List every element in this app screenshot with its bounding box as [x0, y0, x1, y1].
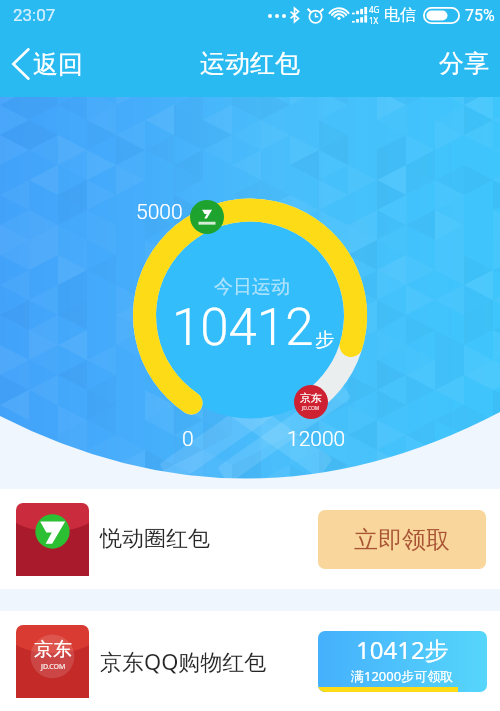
- staticText: 0: [182, 427, 194, 452]
- staticText: 悦动圈红包: [100, 525, 210, 553]
- staticText: 75%: [465, 6, 495, 25]
- staticText: 运动红包: [200, 48, 300, 79]
- button[interactable]: 悦动圈 5000 步目标: [190, 200, 224, 234]
- staticText: 10412: [172, 298, 314, 358]
- staticText: 今日运动: [214, 275, 290, 299]
- staticText: 5000: [136, 200, 183, 225]
- staticText: 京东QQ购物红包: [100, 646, 267, 676]
- staticText: 4G: [369, 4, 380, 15]
- button[interactable]: 立即领取: [318, 510, 486, 569]
- staticText: 步: [315, 328, 334, 352]
- button[interactable]: 京东: [0, 611, 500, 711]
- staticText: JD.COM: [302, 405, 320, 412]
- staticText: 返回: [33, 49, 83, 80]
- staticText: 1X: [369, 15, 379, 26]
- button[interactable]: 分享: [423, 36, 500, 91]
- staticText: 满12000步可领取: [351, 667, 454, 685]
- button[interactable]: 10412步: [318, 631, 487, 692]
- button[interactable]: 返回: [0, 38, 95, 90]
- staticText: 23:07: [13, 5, 56, 25]
- staticText: JD.COM: [41, 662, 66, 672]
- staticText: 立即领取: [354, 525, 450, 555]
- staticText: 电信: [384, 5, 416, 25]
- staticText: 京东: [34, 638, 72, 662]
- staticText: 京东: [300, 391, 322, 405]
- staticText: 12000: [287, 427, 346, 452]
- staticText: 10412步: [356, 633, 449, 666]
- button[interactable]: 京东 12000 步目标: [294, 385, 328, 419]
- button[interactable]: 悦动圈红包: [0, 489, 500, 589]
